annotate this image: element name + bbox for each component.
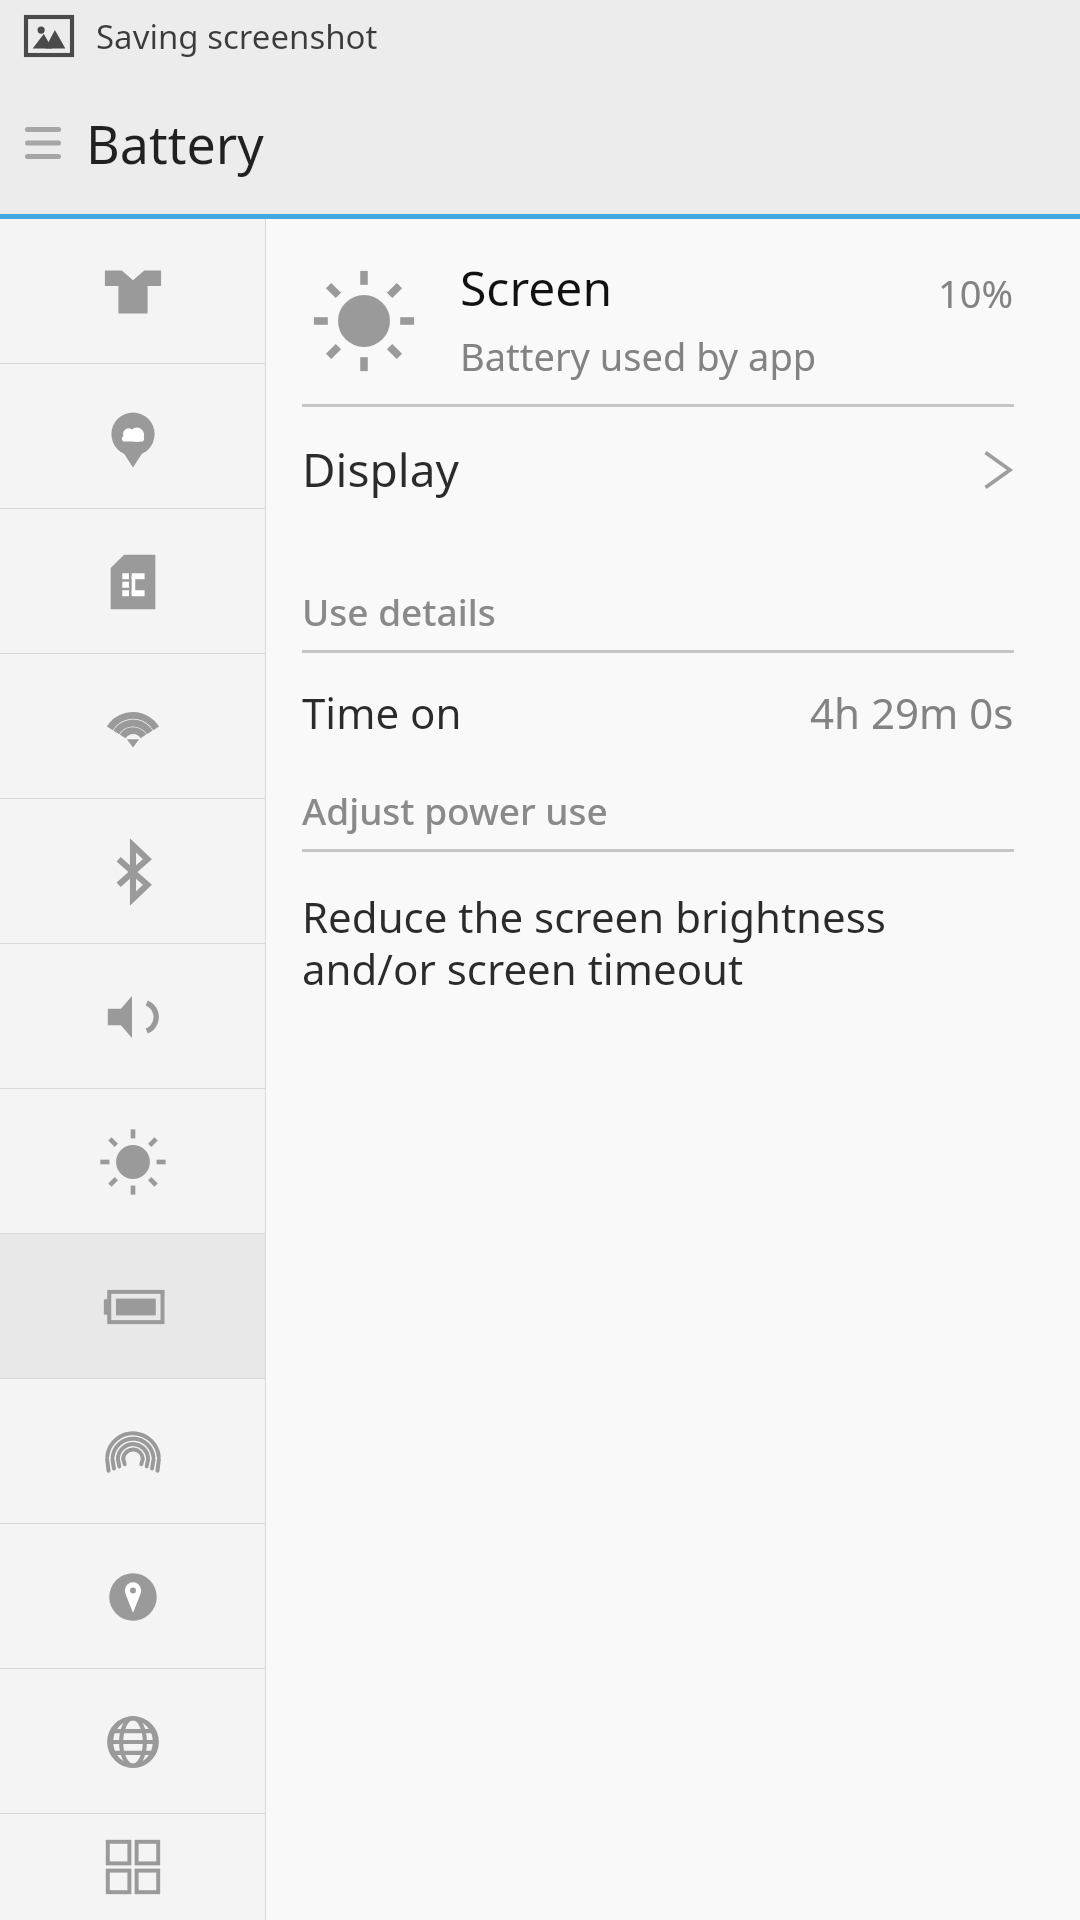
button[interactable]: Language — [0, 1669, 265, 1814]
button[interactable]: Open navigation menu — [0, 72, 86, 214]
button[interactable]: Location — [0, 1524, 265, 1669]
staticText: 10% — [938, 267, 1014, 319]
button[interactable]: SIM cards — [0, 509, 265, 654]
staticText: Display — [302, 438, 980, 501]
button[interactable]: Cloud — [0, 364, 265, 509]
button[interactable]: Battery — [0, 1234, 265, 1379]
staticText: Time on — [302, 684, 810, 741]
staticText: Adjust power use — [302, 785, 608, 835]
button[interactable]: Wi-Fi — [0, 654, 265, 799]
button[interactable]: Brightness — [0, 1089, 265, 1234]
staticText: Use details — [302, 586, 496, 636]
button[interactable]: Display — [266, 407, 1080, 532]
staticText: Reduce the screen brightness and/or scre… — [302, 888, 886, 997]
staticText: 4h 29m 0s — [810, 684, 1014, 741]
button[interactable]: Bluetooth — [0, 799, 265, 944]
staticText: Battery — [86, 108, 264, 179]
staticText: Screen — [460, 255, 613, 320]
button[interactable]: Themes — [0, 219, 265, 364]
staticText: Battery used by app — [460, 330, 817, 382]
button[interactable]: Fingerprint — [0, 1379, 265, 1524]
button[interactable]: Sound — [0, 944, 265, 1089]
staticText: Saving screenshot — [96, 14, 378, 59]
button[interactable]: Apps — [0, 1814, 265, 1920]
